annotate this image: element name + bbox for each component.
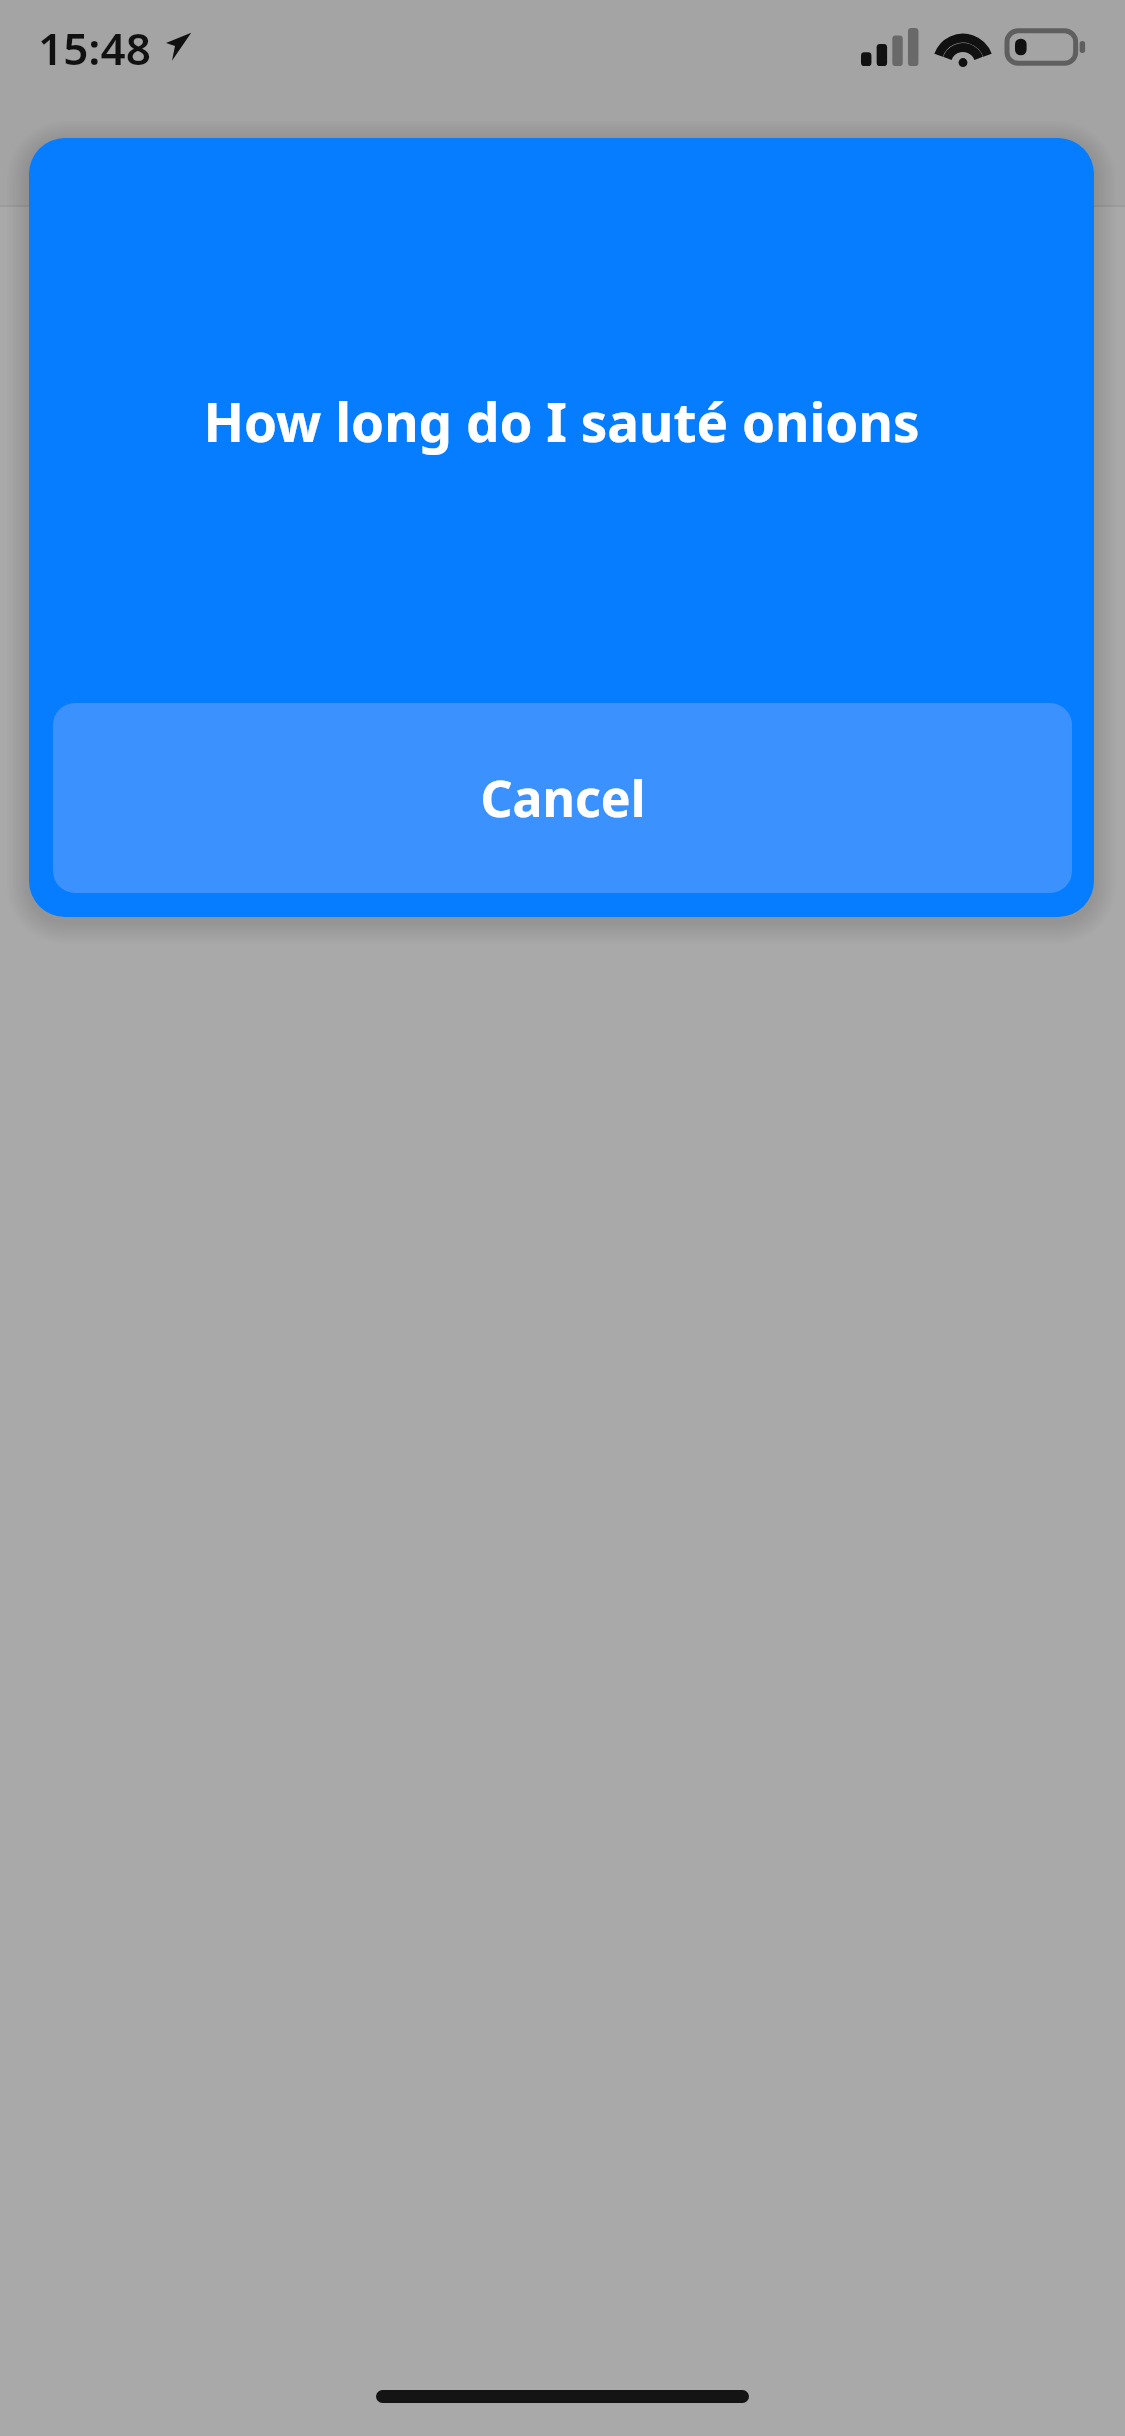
- staticText: How long do I sauté onions: [203, 385, 920, 457]
- button[interactable]: Cancel: [53, 703, 1072, 893]
- staticText: Cancel: [480, 764, 646, 832]
- staticText: 15:48: [38, 18, 151, 78]
